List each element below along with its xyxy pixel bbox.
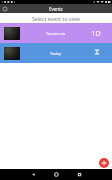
button[interactable]: Navigate up: [1, 5, 9, 13]
staticText: Select event to view: [32, 15, 80, 22]
staticText: Events: [49, 6, 63, 12]
button[interactable]: Home: [49, 169, 63, 180]
staticText: 1D: [91, 28, 101, 38]
staticText: Today: [50, 51, 62, 56]
button[interactable]: Tomorrow: [0, 23, 112, 43]
button[interactable]: Today: [0, 43, 112, 63]
staticText: Tomorrow: [46, 31, 66, 36]
button[interactable]: Add event: [99, 158, 109, 168]
button[interactable]: Back: [26, 169, 40, 180]
button[interactable]: Recent apps: [72, 169, 86, 180]
